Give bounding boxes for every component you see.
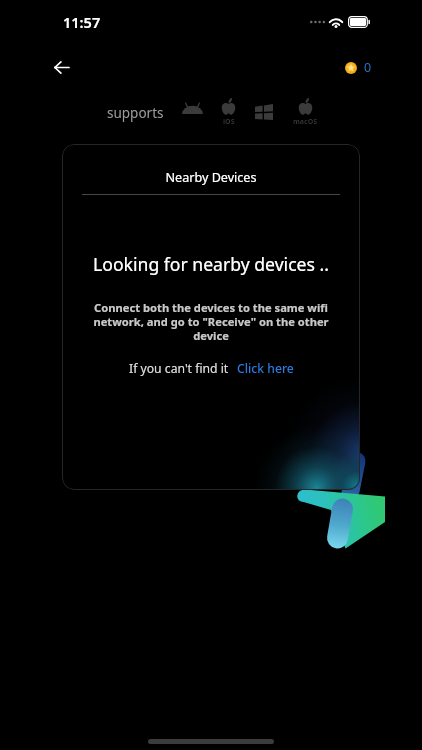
staticText: 0: [364, 59, 372, 76]
staticText: Connect both the devices to the same wif…: [77, 300, 345, 343]
staticText: iOS: [223, 117, 235, 127]
staticText: Click here: [237, 360, 294, 377]
staticText: supports: [107, 104, 164, 122]
staticText: 11:57: [63, 12, 101, 32]
staticText: If you can't find it: [129, 360, 229, 377]
staticText: Nearby Devices: [62, 169, 360, 186]
button[interactable]: Coins: 0: [345, 59, 372, 76]
staticText: macOS: [293, 117, 318, 127]
staticText: Looking for nearby devices ..: [62, 252, 360, 276]
button[interactable]: Back: [41, 47, 81, 87]
button[interactable]: Click here: [237, 360, 294, 377]
